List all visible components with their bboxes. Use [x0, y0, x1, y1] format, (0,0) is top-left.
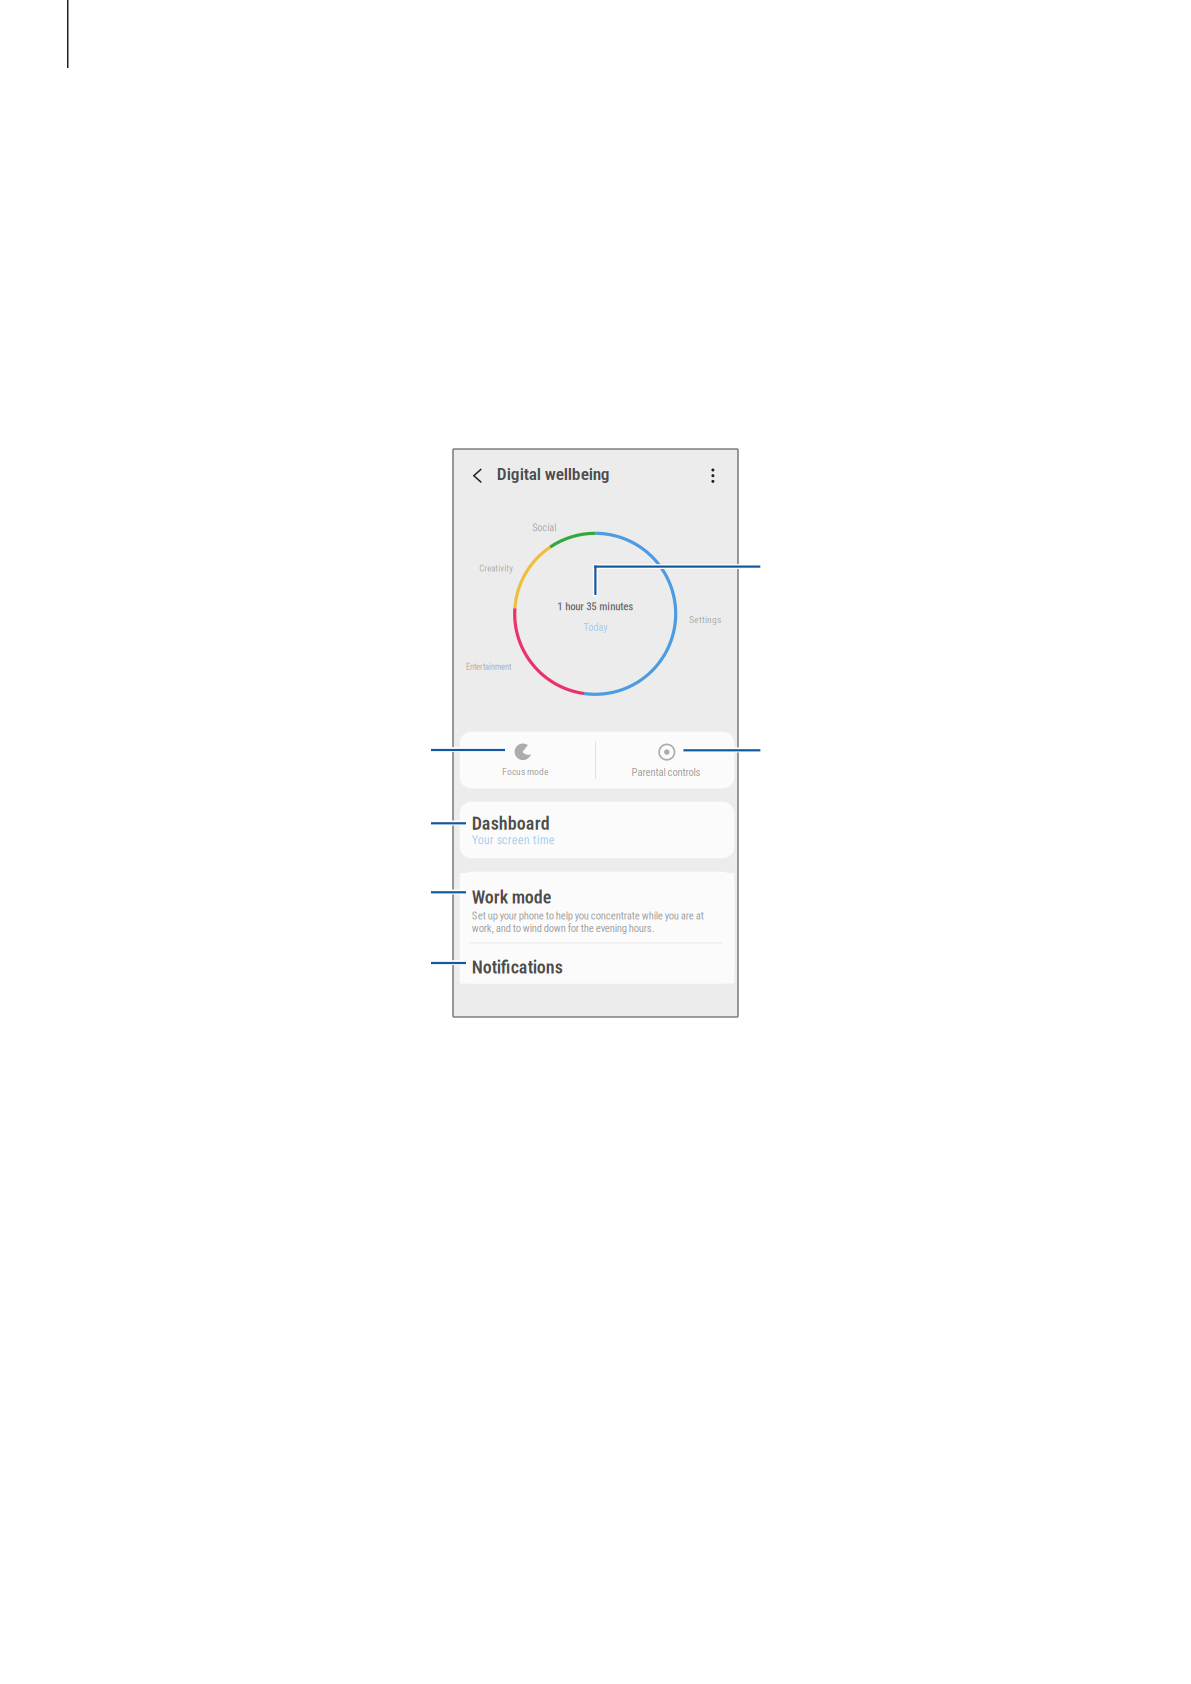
button[interactable]: Dashboard — [460, 802, 734, 858]
staticText: Notifications — [472, 957, 563, 978]
staticText: Today — [583, 621, 607, 633]
staticText: Set up your phone to help you concentrat… — [472, 909, 704, 934]
staticText: 1 hour 35 minutes — [557, 600, 633, 613]
staticText: Digital wellbeing — [497, 464, 610, 484]
staticText: Entertainment — [466, 662, 511, 672]
button[interactable]: Focus mode — [460, 732, 597, 788]
button[interactable]: Parental controls — [597, 732, 734, 788]
staticText: Dashboard — [472, 813, 550, 834]
staticText: Parental controls — [631, 766, 700, 778]
button[interactable]: Work mode — [460, 873, 734, 943]
staticText: Work mode — [472, 887, 552, 908]
button[interactable]: Back — [461, 462, 487, 488]
staticText: Social — [532, 522, 556, 534]
staticText: Creativity — [479, 563, 513, 574]
staticText: Focus mode — [502, 766, 549, 777]
staticText: Your screen time — [472, 833, 555, 847]
staticText: Settings — [689, 614, 721, 625]
button[interactable]: More options — [700, 463, 726, 489]
button[interactable]: Notifications — [460, 944, 734, 983]
